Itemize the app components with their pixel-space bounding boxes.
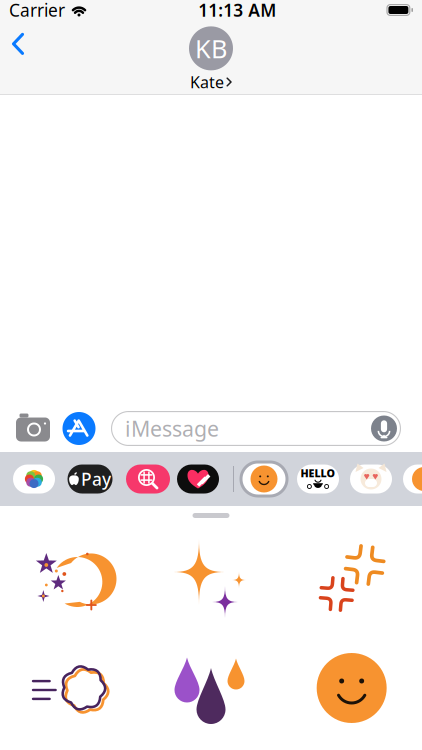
button[interactable]: Moon sticker xyxy=(24,534,116,626)
button[interactable]: Hello pack xyxy=(292,460,343,497)
staticText: Pay xyxy=(81,467,111,490)
staticText: HELLO xyxy=(300,466,335,480)
button[interactable]: Stickers xyxy=(238,460,289,497)
staticText: KB xyxy=(195,32,227,65)
staticText: Kate xyxy=(190,71,224,93)
button[interactable]: Back xyxy=(0,22,39,65)
staticText: iMessage xyxy=(125,414,219,443)
button[interactable]: Sparkles sticker xyxy=(165,534,257,626)
button[interactable]: Sparks sticker xyxy=(306,534,398,626)
button[interactable]: Images xyxy=(121,460,174,497)
button[interactable]: Puff sticker xyxy=(24,642,116,734)
staticText: 11:13 AM xyxy=(198,0,276,21)
button[interactable]: Digital Touch xyxy=(172,460,223,497)
button[interactable]: Apple Pay xyxy=(63,460,117,497)
button[interactable]: Camera xyxy=(13,408,53,449)
button[interactable]: Message field xyxy=(111,411,401,446)
button[interactable]: Smiley sticker xyxy=(306,642,398,734)
button[interactable]: Photos xyxy=(8,460,59,497)
button[interactable]: Cat pack xyxy=(345,460,396,497)
button[interactable]: Apps xyxy=(53,407,105,449)
staticText: Carrier xyxy=(9,0,65,21)
button[interactable]: Drops sticker xyxy=(165,642,257,734)
button[interactable]: Emoji pack xyxy=(398,460,422,497)
button[interactable]: Kate xyxy=(189,22,233,93)
